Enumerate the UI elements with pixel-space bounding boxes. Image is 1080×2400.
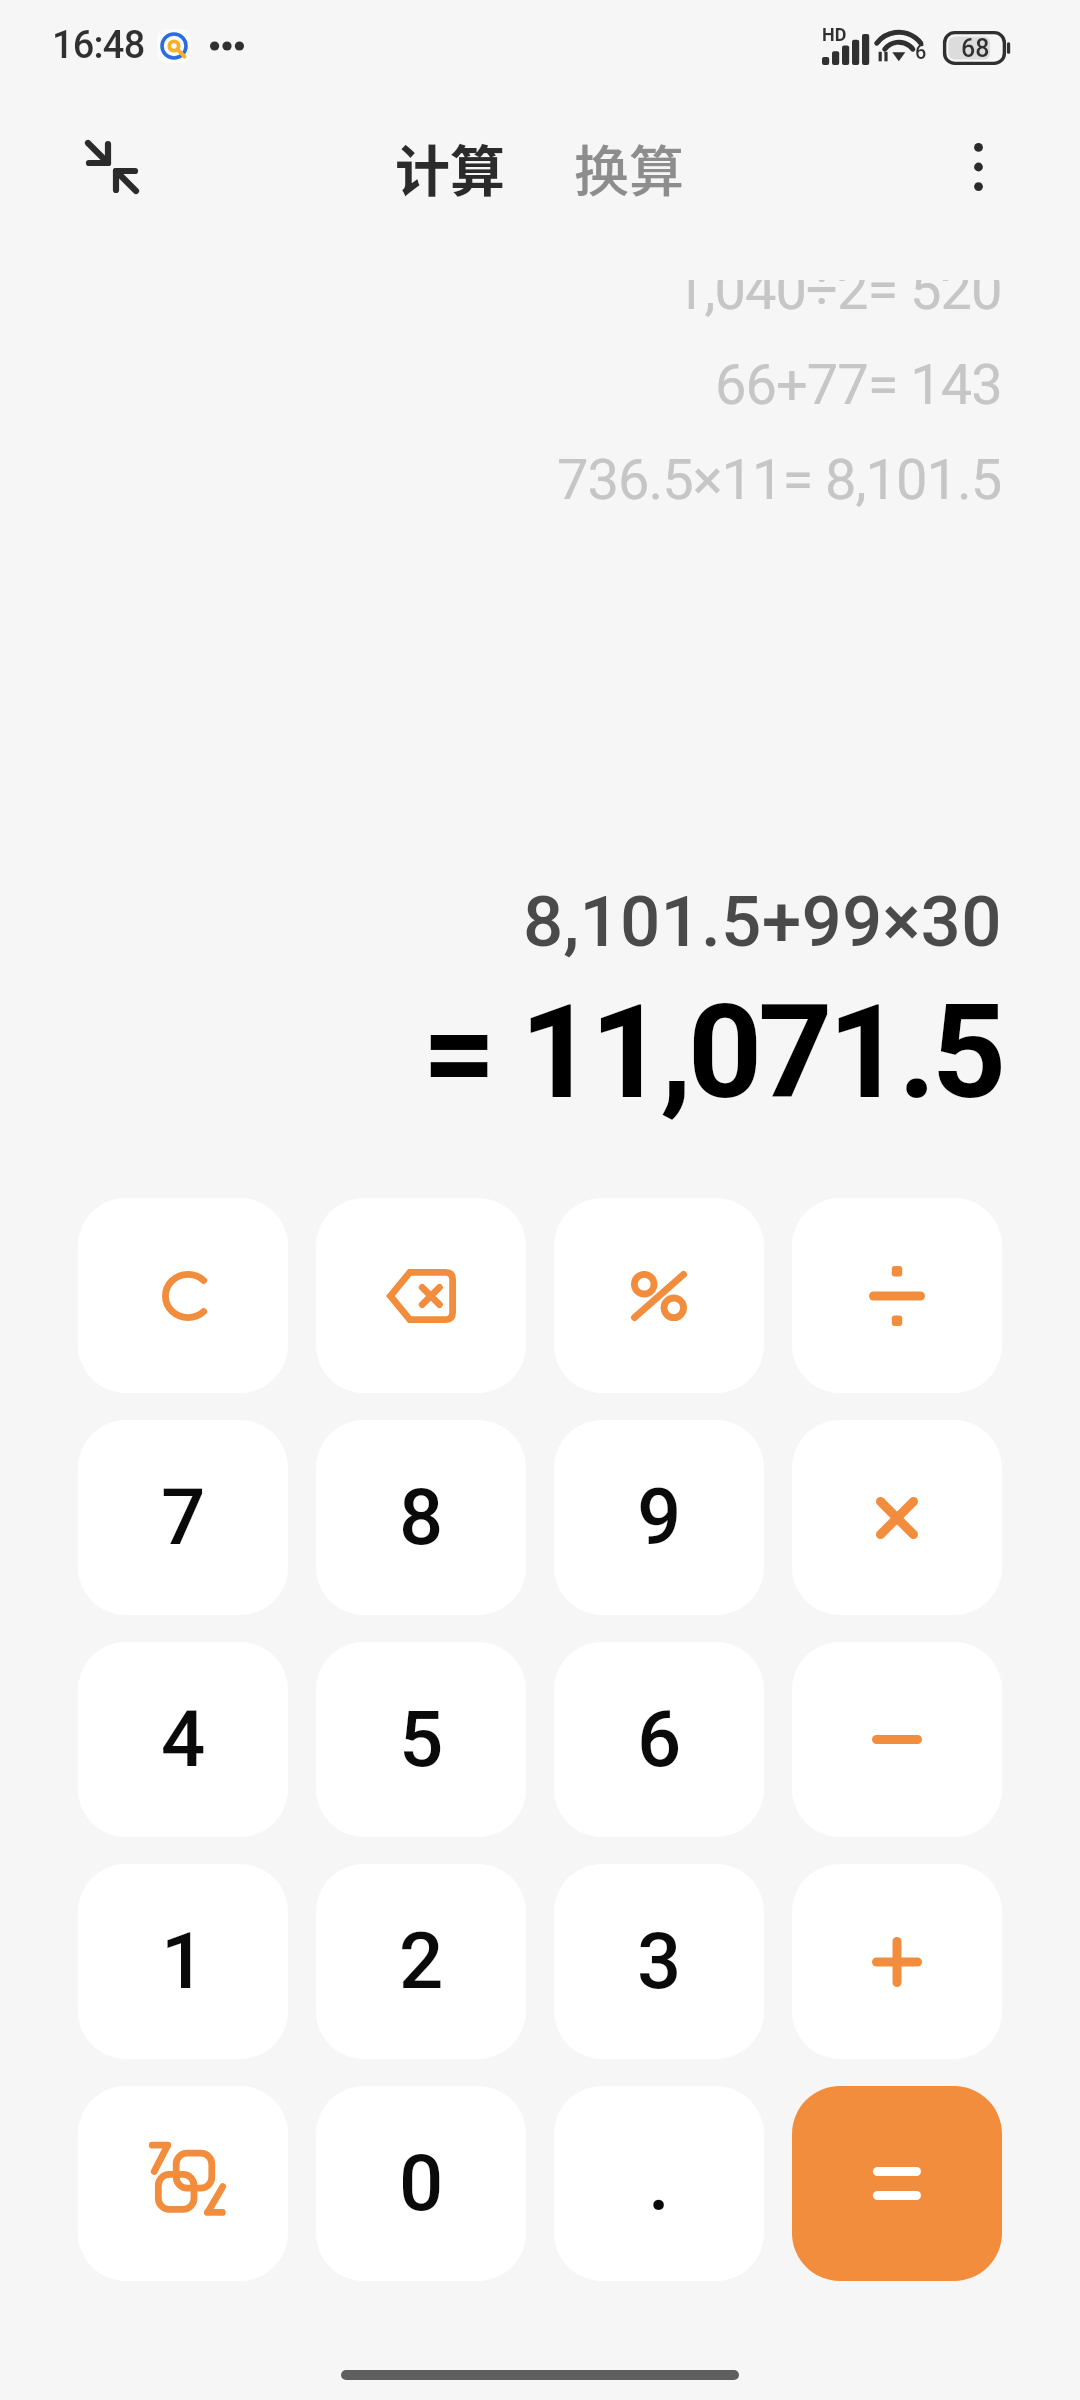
staticText: 16:48 xyxy=(52,23,145,68)
button[interactable]: 4 xyxy=(78,1642,288,1837)
staticText: 计算 xyxy=(395,127,506,207)
staticText: 1,040÷2= 520 xyxy=(674,280,1002,323)
button[interactable]: More options xyxy=(928,117,1028,217)
staticText: HD xyxy=(822,24,847,45)
staticText: 2 xyxy=(399,1916,444,2007)
staticText: 5 xyxy=(399,1694,444,1785)
button[interactable]: Divide xyxy=(792,1198,1002,1393)
staticText: 8,101.5+99×30 xyxy=(523,880,1002,963)
staticText: 8 xyxy=(399,1472,444,1563)
button[interactable]: 7 xyxy=(78,1420,288,1615)
staticText: 736.5×11= 8,101.5 xyxy=(557,447,1002,513)
button[interactable]: 换算 xyxy=(566,115,693,219)
staticText: 1 xyxy=(161,1916,206,2007)
button[interactable]: Scientific xyxy=(78,2086,288,2281)
staticText: 68 xyxy=(961,34,990,63)
staticText: . xyxy=(648,2138,670,2229)
button[interactable]: 8 xyxy=(316,1420,526,1615)
button[interactable]: Clear xyxy=(78,1198,288,1393)
button[interactable]: Minus xyxy=(792,1642,1002,1837)
button[interactable]: Multiply xyxy=(792,1420,1002,1615)
button[interactable]: 计算 xyxy=(387,115,514,219)
button[interactable]: Plus xyxy=(792,1864,1002,2059)
staticText: 0 xyxy=(399,2138,444,2229)
button[interactable]: 2 xyxy=(316,1864,526,2059)
staticText: 9 xyxy=(637,1472,682,1563)
button[interactable]: 6 xyxy=(554,1642,764,1837)
button[interactable]: Collapse xyxy=(62,117,162,217)
staticText: 6 xyxy=(915,40,927,63)
staticText: 3 xyxy=(637,1916,682,2007)
button[interactable]: 3 xyxy=(554,1864,764,2059)
button[interactable]: Backspace xyxy=(316,1198,526,1393)
button[interactable]: 0 xyxy=(316,2086,526,2281)
staticText: 4 xyxy=(161,1694,206,1785)
button[interactable]: 5 xyxy=(316,1642,526,1837)
button[interactable]: . xyxy=(554,2086,764,2281)
staticText: 66+77= 143 xyxy=(715,352,1002,418)
staticText: 7 xyxy=(161,1472,206,1563)
button[interactable]: 1 xyxy=(78,1864,288,2059)
staticText: = 11,071.5 xyxy=(422,976,1002,1128)
button[interactable]: Percent xyxy=(554,1198,764,1393)
staticText: 换算 xyxy=(574,127,685,207)
button[interactable]: 9 xyxy=(554,1420,764,1615)
staticText: 6 xyxy=(637,1694,682,1785)
button[interactable]: Equals xyxy=(792,2086,1002,2281)
